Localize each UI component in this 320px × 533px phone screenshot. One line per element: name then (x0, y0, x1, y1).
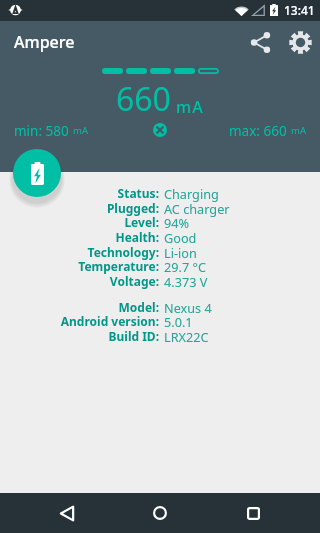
button[interactable]: Battery charging (13, 149, 61, 197)
staticText: Technology: (0, 244, 159, 260)
button[interactable]: Reset (153, 123, 167, 137)
button[interactable]: Share (240, 22, 280, 62)
staticText: mA (73, 124, 88, 137)
staticText: Ampere (14, 31, 75, 53)
staticText: Li-ion (164, 244, 197, 261)
staticText: Model: (0, 299, 159, 315)
staticText: mA (176, 96, 205, 118)
staticText: LRX22C (164, 328, 209, 345)
staticText: Nexus 4 (164, 299, 212, 316)
staticText: max: 660 (229, 122, 291, 138)
staticText: 660 (116, 77, 171, 121)
staticText: 13:41 (284, 2, 315, 18)
staticText: 94% (164, 214, 190, 231)
button[interactable]: Back (47, 493, 87, 533)
staticText: Plugged: (0, 200, 159, 216)
staticText: 29.7 °C (164, 258, 206, 275)
staticText: Level: (0, 214, 159, 230)
staticText: min: 580 (14, 122, 73, 138)
staticText: 5.0.1 (164, 313, 193, 330)
staticText: Voltage: (0, 273, 159, 289)
button[interactable]: Settings (280, 22, 320, 62)
button[interactable]: Recent apps (233, 493, 273, 533)
staticText: 4.373 V (164, 273, 208, 290)
staticText: Good (164, 229, 197, 246)
staticText: mA (291, 124, 306, 137)
staticText: Charging (164, 185, 219, 202)
staticText: Android version: (0, 313, 159, 329)
staticText: Temperature: (0, 258, 159, 274)
staticText: Build ID: (0, 328, 159, 344)
staticText: Status: (0, 185, 159, 201)
staticText: Health: (0, 229, 159, 245)
button[interactable]: Home (140, 493, 180, 533)
staticText: AC charger (164, 200, 230, 217)
